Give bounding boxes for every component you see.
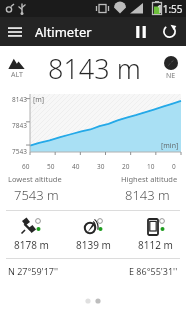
- other: Sensor 8178 m: [17, 217, 45, 237]
- staticText: E 86°55'31'': [129, 265, 178, 277]
- staticText: 20: [122, 162, 130, 171]
- staticText: N 27°59'17'': [8, 265, 58, 277]
- staticText: 40: [72, 162, 80, 171]
- staticText: 10: [147, 162, 155, 171]
- button[interactable]: Reset: [156, 17, 183, 46]
- button[interactable]: Open navigation menu: [0, 17, 30, 46]
- other: Sensor 8112 m: [141, 217, 169, 237]
- staticText: 7843: [12, 121, 27, 130]
- staticText: 8139 m: [76, 238, 111, 252]
- staticText: 8143: [12, 95, 27, 104]
- staticText: 50: [47, 162, 55, 171]
- staticText: [m]: [33, 95, 45, 105]
- button[interactable]: Sensor 8112 m: [124, 216, 186, 253]
- staticText: 8143 m: [48, 50, 141, 87]
- staticText: 8112 m: [138, 238, 173, 252]
- staticText: 8178 m: [14, 238, 49, 252]
- staticText: 11:55: [157, 2, 183, 16]
- button[interactable]: Sensor 8139 m: [62, 216, 124, 253]
- staticText: 60: [22, 162, 30, 171]
- staticText: Highest altitude: [121, 174, 178, 184]
- staticText: 7543 m: [14, 186, 59, 204]
- staticText: ALT: [11, 70, 23, 80]
- staticText: NE: [166, 71, 176, 81]
- staticText: 30: [97, 162, 105, 171]
- staticText: 0: [172, 162, 176, 171]
- staticText: Altimeter: [35, 23, 92, 41]
- staticText: [min]: [161, 141, 179, 151]
- other: Sensor 8139 m: [79, 217, 107, 237]
- button[interactable]: Sensor 8178 m: [0, 216, 62, 253]
- staticText: 7543: [12, 147, 27, 156]
- button[interactable]: Pause: [126, 17, 156, 46]
- staticText: Lowest altitude: [8, 174, 62, 184]
- staticText: 8143 m: [125, 186, 170, 204]
